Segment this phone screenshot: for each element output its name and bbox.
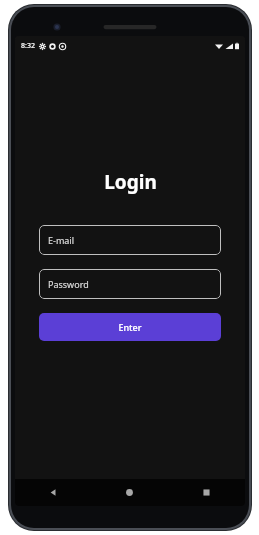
button[interactable]: E-mail xyxy=(39,225,221,255)
staticText: 8:32 xyxy=(21,41,35,51)
button[interactable]: Back xyxy=(15,479,91,506)
button[interactable]: Recent apps xyxy=(168,479,245,506)
button[interactable]: Home xyxy=(91,479,168,506)
button[interactable]: Enter xyxy=(39,313,221,341)
button[interactable]: Password xyxy=(39,269,221,299)
staticText: Enter xyxy=(118,321,142,333)
staticText: Password xyxy=(48,278,89,290)
staticText: Login xyxy=(104,169,157,195)
staticText: E-mail xyxy=(48,234,75,246)
